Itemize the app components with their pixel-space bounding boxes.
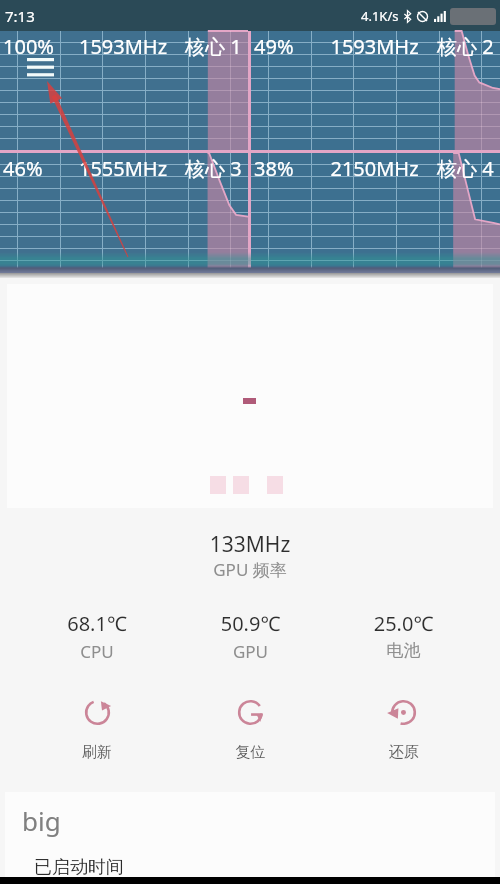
staticText: CPU xyxy=(20,640,174,663)
staticText: GPU xyxy=(174,640,327,663)
staticText: 电池 xyxy=(327,640,480,661)
staticText: 2150MHz xyxy=(312,155,437,182)
staticText: 46% xyxy=(3,155,61,182)
button[interactable]: 还原 xyxy=(327,699,480,726)
staticText: 100% xyxy=(3,33,61,60)
staticText: 核心 4 xyxy=(437,155,494,182)
staticText: 已启动时间 xyxy=(34,856,124,879)
staticText: 1555MHz xyxy=(61,155,185,182)
staticText: 还原 xyxy=(327,743,480,762)
button[interactable]: Menu xyxy=(27,58,54,77)
staticText: 50.9℃ xyxy=(174,610,327,637)
staticText: 68.1℃ xyxy=(20,610,174,637)
staticText: 49% xyxy=(254,33,312,60)
staticText: 核心 2 xyxy=(437,33,494,60)
staticText: 4.1K/s xyxy=(361,7,399,25)
staticText: 刷新 xyxy=(20,743,174,762)
staticText: big xyxy=(22,803,61,838)
button[interactable]: big xyxy=(5,792,495,877)
button[interactable]: 复位 xyxy=(174,699,327,726)
staticText: 复位 xyxy=(174,743,327,762)
staticText: 核心 3 xyxy=(185,155,242,182)
staticText: 核心 1 xyxy=(185,33,242,60)
button[interactable]: 刷新 xyxy=(20,699,174,726)
staticText: 25.0℃ xyxy=(327,610,480,637)
staticText: GPU 频率 xyxy=(0,558,500,581)
staticText: 1593MHz xyxy=(61,33,185,60)
staticText: 7:13 xyxy=(5,6,35,26)
button[interactable] xyxy=(7,284,493,508)
staticText: 1593MHz xyxy=(312,33,437,60)
staticText: 133MHz xyxy=(0,530,500,559)
staticText: 38% xyxy=(254,155,312,182)
